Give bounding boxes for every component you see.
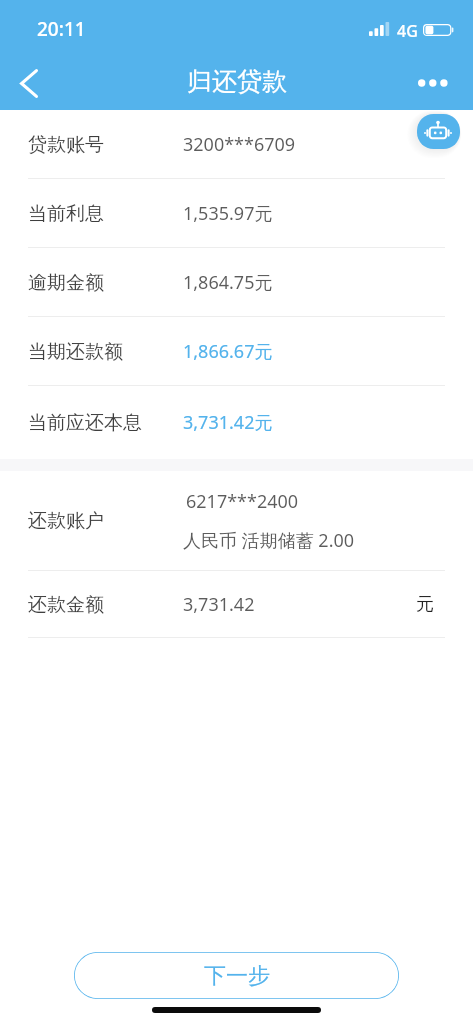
staticText: 下一步 (204, 962, 270, 990)
staticText: 3200***6709 (183, 132, 296, 157)
button[interactable]: 下一步 (74, 952, 399, 999)
button[interactable]: More options (411, 63, 459, 103)
staticText: 还款金额 (28, 593, 104, 617)
staticText: 1,535.97元 (183, 201, 273, 226)
staticText: 元 (416, 593, 434, 616)
staticText: 人民币 活期储蓄 2.00 (183, 528, 355, 553)
staticText: 贷款账号 (28, 133, 104, 157)
staticText: 归还贷款 (187, 66, 287, 97)
other: Signal strength (369, 22, 392, 36)
staticText: 当前利息 (28, 202, 104, 226)
staticText: 6217***2400 (186, 489, 299, 514)
staticText: 逾期金额 (28, 271, 104, 295)
button[interactable]: Chat assistant (417, 114, 460, 149)
button[interactable]: 当前应还本息 (0, 386, 473, 459)
staticText: 当期还款额 (28, 340, 123, 364)
staticText: 20:11 (37, 16, 86, 42)
button[interactable]: 还款账户 (0, 471, 473, 571)
staticText: 当前应还本息 (28, 411, 142, 435)
button[interactable]: 当前利息 (0, 179, 473, 248)
button[interactable]: Back (6, 60, 52, 106)
button[interactable]: 逾期金额 (0, 248, 473, 317)
staticText: 1,866.67元 (183, 339, 273, 364)
staticText: 3,731.42 (183, 592, 255, 617)
button[interactable]: 当期还款额 (0, 317, 473, 386)
button[interactable]: 贷款账号 (0, 110, 473, 179)
button[interactable]: 还款金额 (0, 571, 473, 638)
staticText: 4G (397, 20, 418, 42)
staticText: 还款账户 (28, 509, 104, 533)
other: Battery (423, 24, 454, 36)
staticText: 3,731.42元 (183, 410, 273, 435)
staticText: 1,864.75元 (183, 270, 273, 295)
